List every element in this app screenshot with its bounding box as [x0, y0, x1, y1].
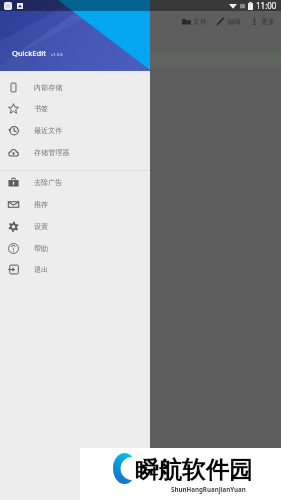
- button[interactable]: 内部存储: [0, 76, 150, 98]
- staticText: 推荐: [34, 200, 49, 209]
- staticText: 帮助: [34, 244, 49, 253]
- staticText: QuickEdit: [12, 48, 46, 58]
- staticText: 更多: [261, 17, 275, 26]
- staticText: 退出: [34, 265, 49, 274]
- button[interactable]: 文件: [180, 15, 209, 28]
- staticText: 去除广告: [34, 178, 63, 187]
- button[interactable]: 编辑: [214, 15, 243, 28]
- button[interactable]: 退出: [0, 258, 150, 280]
- staticText: 设置: [34, 222, 49, 231]
- button[interactable]: 更多: [248, 15, 277, 28]
- staticText: ShunHangRuanJianYuan: [171, 485, 246, 493]
- staticText: 编辑: [227, 17, 241, 26]
- button[interactable]: 帮助: [0, 237, 150, 259]
- staticText: 内部存储: [34, 83, 63, 92]
- staticText: v1.9.6: [51, 52, 63, 58]
- button[interactable]: 存储管理器: [0, 141, 150, 163]
- staticText: 存储管理器: [34, 148, 70, 157]
- staticText: 最近文件: [34, 126, 63, 135]
- staticText: 瞬航软件园: [135, 455, 253, 485]
- button[interactable]: 推荐: [0, 193, 150, 215]
- button[interactable]: 最近文件: [0, 119, 150, 141]
- staticText: 书签: [34, 104, 49, 113]
- staticText: 11:00: [256, 0, 277, 11]
- button[interactable]: 书签: [0, 97, 150, 119]
- staticText: 文件: [193, 17, 207, 26]
- button[interactable]: 去除广告: [0, 171, 150, 193]
- button[interactable]: 设置: [0, 215, 150, 237]
